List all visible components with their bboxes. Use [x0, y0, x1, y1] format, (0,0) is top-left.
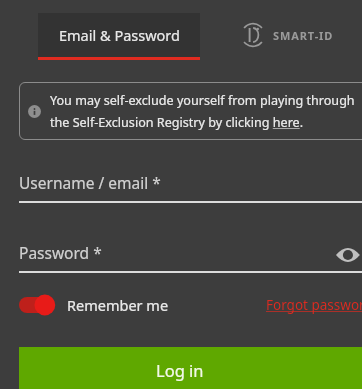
button[interactable]: Username / email * [19, 172, 362, 203]
staticText: Forgot password [266, 296, 362, 314]
button[interactable]: Password * [19, 242, 362, 273]
staticText: You may self-exclude yourself from playi… [50, 92, 355, 109]
button[interactable]: Log in [19, 347, 362, 389]
staticText: Email & Password [59, 25, 180, 45]
button[interactable]: Smart-ID login [240, 18, 334, 52]
staticText: SMART-ID [273, 28, 334, 43]
button[interactable]: Forgot password [266, 293, 362, 317]
staticText: Remember me [67, 295, 169, 315]
staticText: the Self-Exclusion Registry by clicking … [50, 114, 304, 131]
button[interactable]: Email & Password [38, 13, 200, 60]
button[interactable]: Remember me [19, 295, 169, 315]
staticText: Username / email * [19, 172, 161, 193]
button[interactable]: Show password [337, 242, 362, 268]
staticText: Password * [19, 242, 102, 263]
staticText: Log in [156, 359, 204, 381]
button[interactable]: You may self-exclude yourself from playi… [19, 82, 362, 140]
